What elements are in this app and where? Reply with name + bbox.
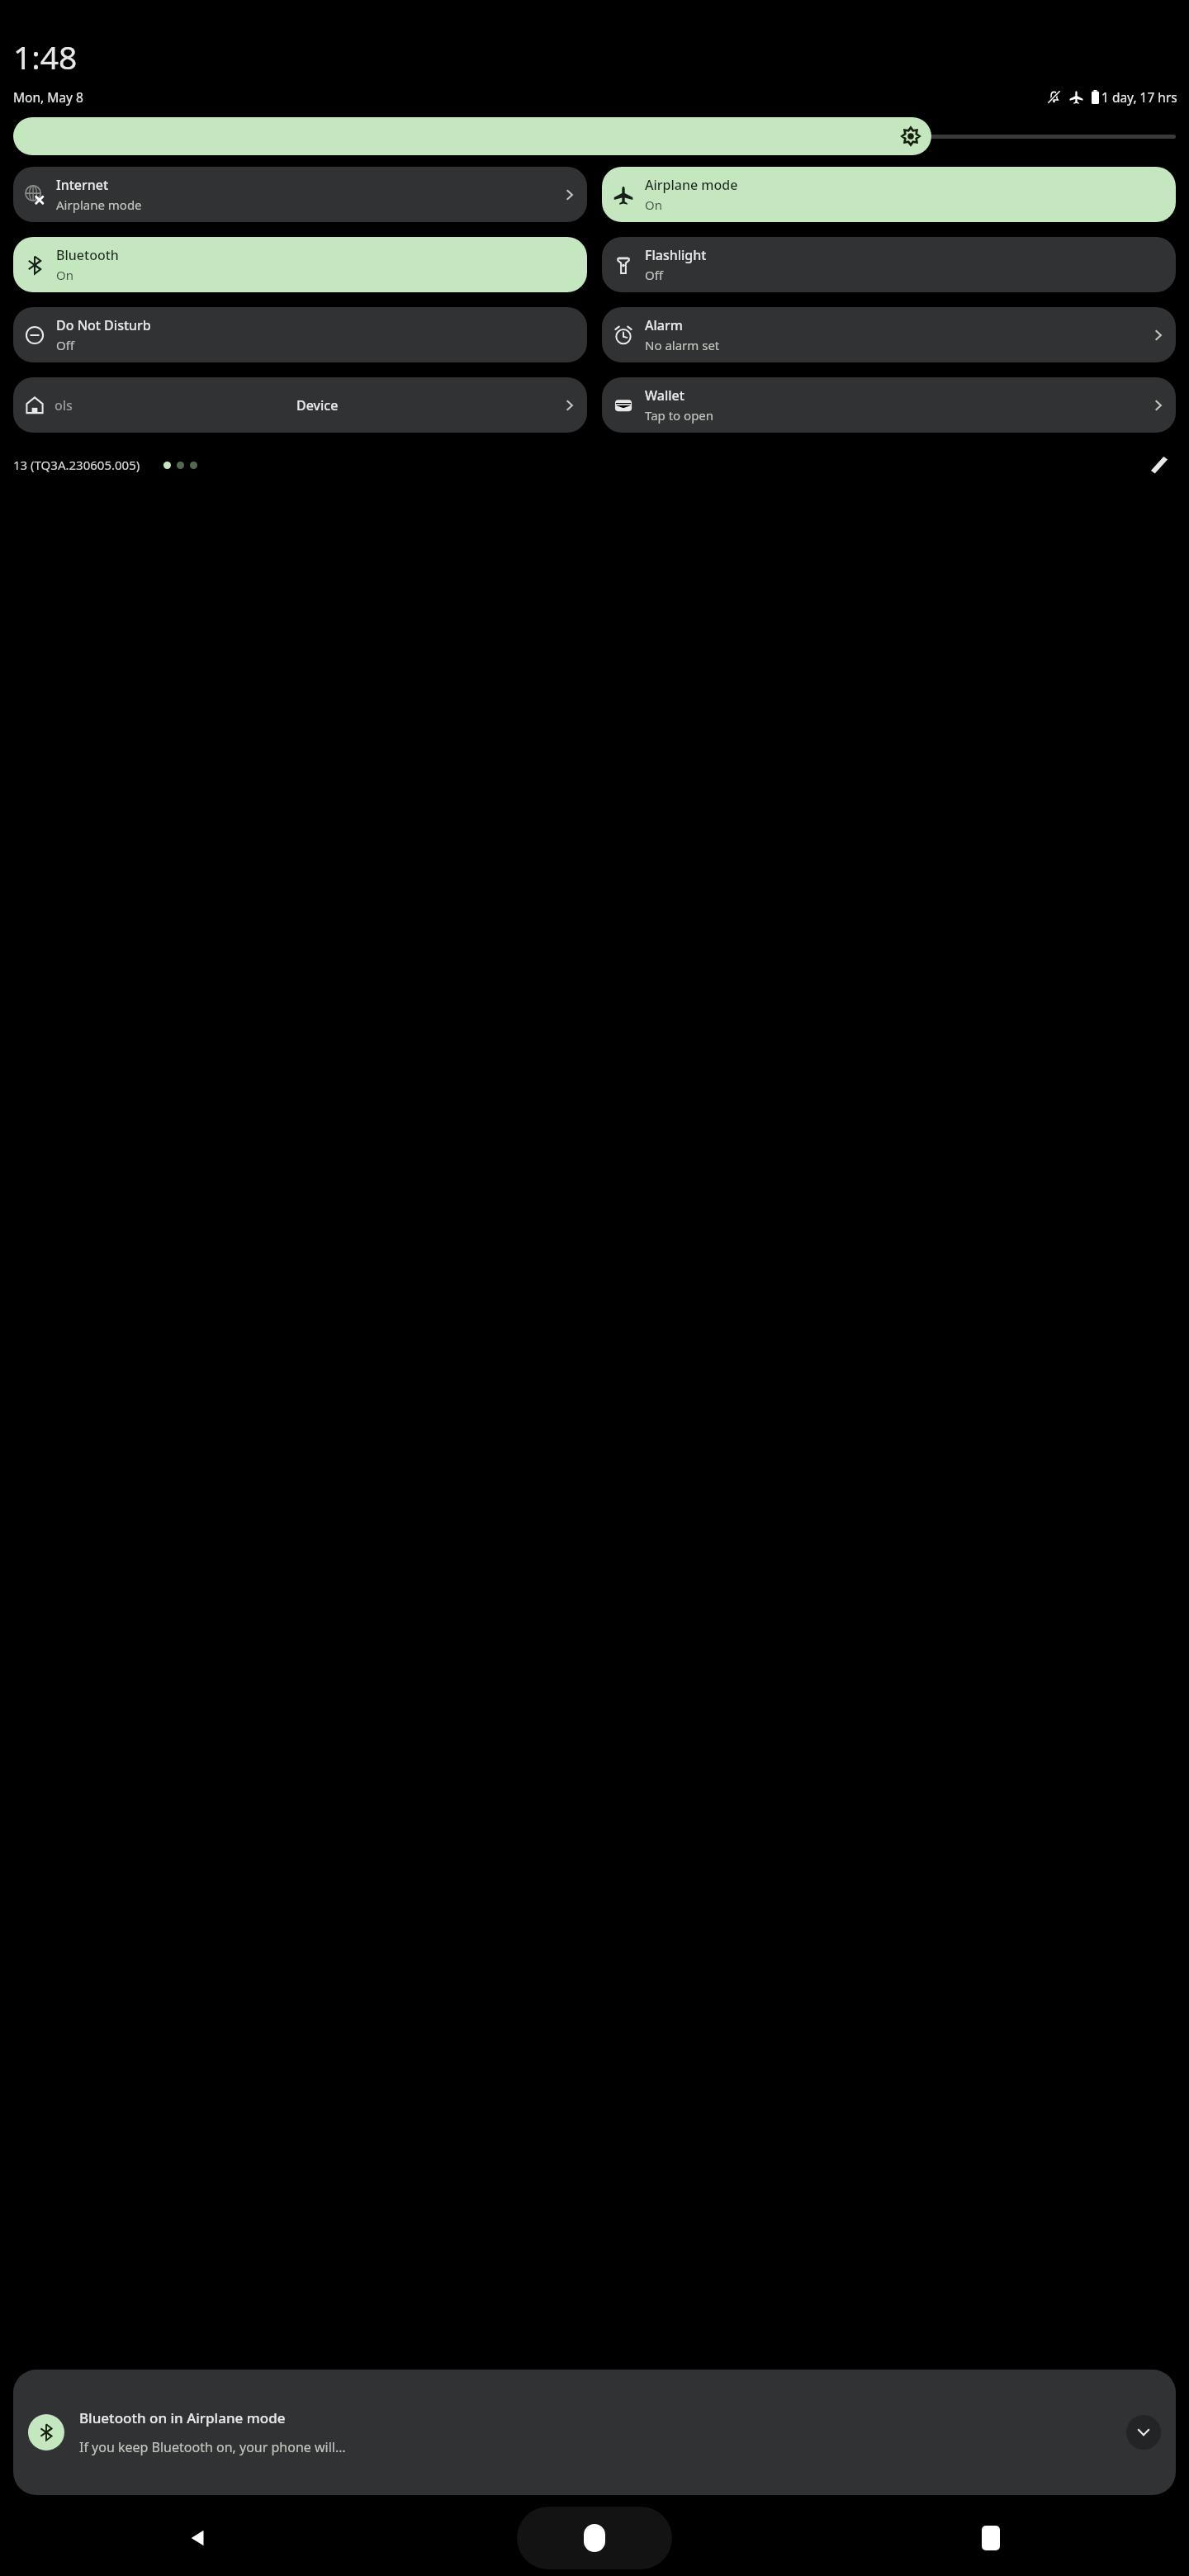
staticText: Mon, May 8 [13, 88, 83, 106]
button[interactable]: ols [13, 377, 587, 433]
staticText: 1 day, 17 hrs [1101, 88, 1177, 106]
button[interactable]: Recents [793, 2507, 1189, 2569]
staticText: Bluetooth on in Airplane mode [79, 2408, 286, 2427]
button[interactable]: Edit tiles [1143, 451, 1176, 479]
staticText: On [645, 197, 662, 213]
button[interactable]: Bluetooth [13, 237, 587, 292]
staticText: Airplane mode [56, 197, 142, 213]
button[interactable]: Wallet [602, 377, 1176, 433]
button[interactable]: Brightness [13, 117, 1176, 155]
button[interactable]: Expand notification [1126, 2415, 1161, 2450]
button[interactable]: Alarm [602, 307, 1176, 362]
button[interactable]: Back [0, 2507, 396, 2569]
staticText: Wallet [645, 386, 685, 405]
staticText: Off [645, 267, 664, 283]
staticText: Flashlight [645, 246, 707, 264]
button[interactable]: Do Not Disturb [13, 307, 587, 362]
staticText: Tap to open [645, 407, 714, 424]
staticText: No alarm set [645, 337, 720, 353]
button[interactable]: Home [396, 2507, 793, 2569]
staticText: 1:48 [13, 35, 78, 78]
staticText: On [56, 267, 73, 283]
staticText: Off [56, 337, 75, 353]
staticText: Do Not Disturb [56, 316, 151, 334]
staticText: Alarm [645, 316, 683, 334]
staticText: If you keep Bluetooth on, your phone wil… [79, 2438, 346, 2456]
staticText: Internet [56, 176, 109, 194]
staticText: Airplane mode [645, 176, 738, 194]
button[interactable]: Bluetooth on in Airplane mode [13, 2370, 1176, 2495]
staticText: 13 (TQ3A.230605.005) [13, 457, 140, 473]
button[interactable]: Flashlight [602, 237, 1176, 292]
staticText: Bluetooth [56, 246, 119, 264]
staticText: ols [54, 396, 73, 414]
button[interactable]: Internet [13, 167, 587, 222]
staticText: Device [296, 396, 339, 414]
button[interactable]: Airplane mode [602, 167, 1176, 222]
